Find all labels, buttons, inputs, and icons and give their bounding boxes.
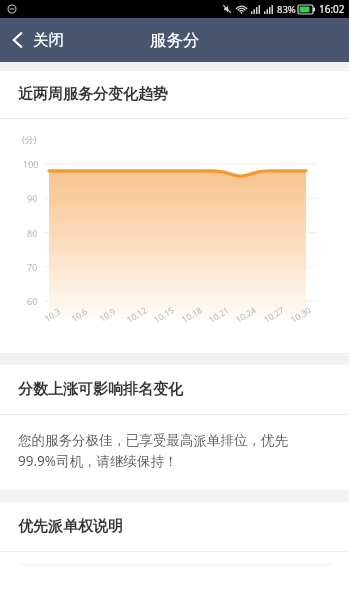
staticText: (分) bbox=[22, 133, 37, 145]
staticText: 您的服务分极佳，已享受最高派单排位，优先 99.9%司机，请继续保持！ bbox=[18, 432, 288, 470]
staticText: 70 bbox=[27, 261, 38, 273]
staticText: 服务分 bbox=[150, 30, 200, 51]
staticText: 优先派单权说明 bbox=[18, 517, 123, 536]
staticText: 60 bbox=[27, 295, 38, 307]
staticText: 10.9 bbox=[97, 305, 118, 325]
staticText: 10.3 bbox=[42, 305, 63, 325]
staticText: 10.15 bbox=[151, 304, 176, 326]
button[interactable]: 关闭 bbox=[0, 22, 78, 58]
staticText: 10.18 bbox=[179, 304, 204, 326]
staticText: 10.21 bbox=[206, 304, 231, 326]
staticText: 关闭 bbox=[33, 30, 64, 50]
staticText: 90 bbox=[27, 192, 38, 204]
staticText: 83% bbox=[277, 3, 296, 16]
staticText: 近两周服务分变化趋势 bbox=[18, 85, 168, 104]
staticText: 100 bbox=[23, 158, 39, 170]
staticText: 分数上涨可影响排名变化 bbox=[18, 380, 183, 399]
staticText: 10.6 bbox=[69, 305, 90, 325]
staticText: 16:02 bbox=[319, 2, 345, 16]
staticText: 10.30 bbox=[288, 304, 313, 326]
staticText: 80 bbox=[27, 227, 38, 239]
staticText: 10.27 bbox=[261, 304, 286, 326]
staticText: 10.12 bbox=[124, 304, 149, 326]
staticText: 10.24 bbox=[233, 304, 258, 326]
